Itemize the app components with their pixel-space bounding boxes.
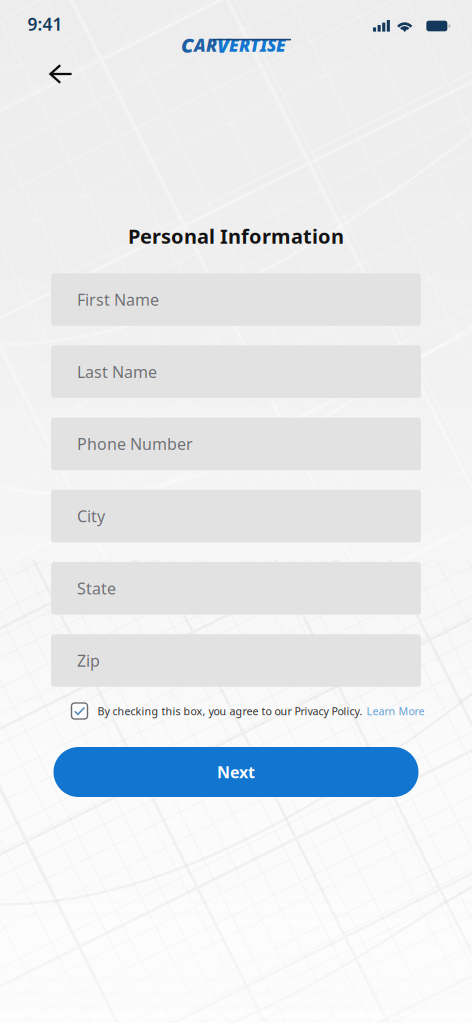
button[interactable]: City <box>51 490 421 542</box>
staticText: V <box>217 32 229 58</box>
staticText: C <box>181 32 194 58</box>
staticText: State <box>77 578 116 599</box>
button[interactable]: Last Name <box>51 345 421 398</box>
button[interactable]: Next <box>53 747 418 797</box>
staticText: AR <box>194 33 217 56</box>
button[interactable]: First Name <box>51 273 421 326</box>
button[interactable]: Zip <box>51 634 421 687</box>
staticText: Last Name <box>77 361 157 382</box>
button[interactable]: By checking this box, you agree to our P… <box>71 699 424 723</box>
staticText: City <box>77 505 105 527</box>
staticText: Phone Number <box>77 433 193 454</box>
staticText: By checking this box, you agree to our P… <box>97 704 362 718</box>
staticText: 9:41 <box>27 12 62 35</box>
staticText: Personal Information <box>128 223 344 249</box>
button[interactable]: State <box>51 562 421 615</box>
button[interactable]: Phone Number <box>51 418 421 470</box>
staticText: Next <box>217 761 255 783</box>
button[interactable]: Back <box>39 54 83 94</box>
staticText: Learn More <box>366 704 424 718</box>
staticText: ERTISE <box>229 33 286 56</box>
staticText: First Name <box>77 289 159 310</box>
staticText: Zip <box>77 650 100 671</box>
